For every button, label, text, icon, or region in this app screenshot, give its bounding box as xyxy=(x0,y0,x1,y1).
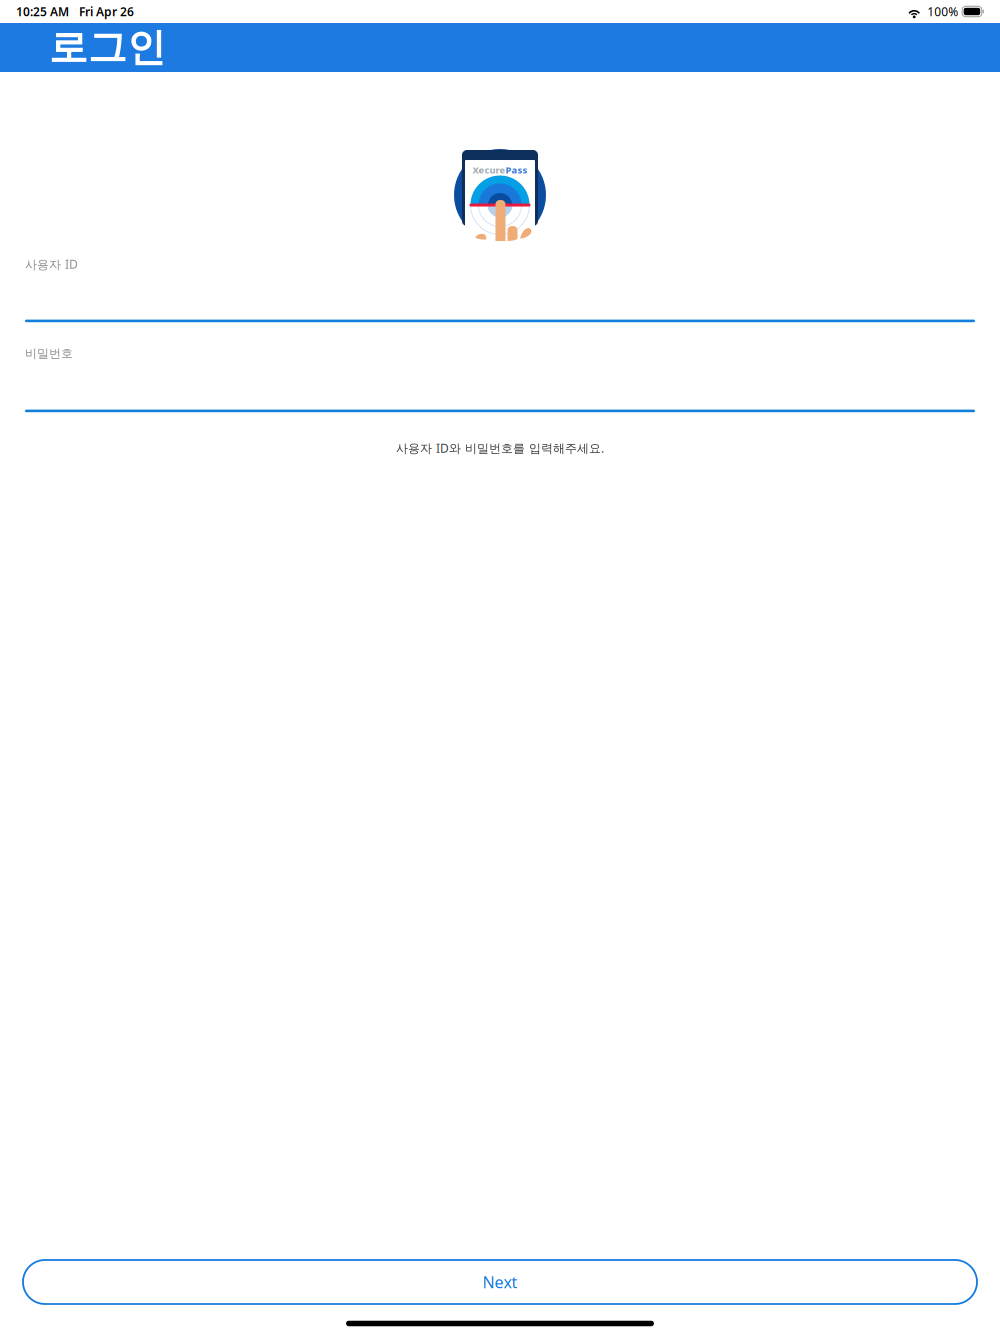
staticText: Pass xyxy=(505,164,527,176)
staticText: 10:25 AM xyxy=(16,3,69,19)
button[interactable]: 비밀번호 xyxy=(25,346,975,412)
staticText: Next xyxy=(482,1271,517,1293)
staticText: 사용자 ID와 비밀번호를 입력해주세요. xyxy=(396,440,604,456)
button[interactable]: Next xyxy=(23,1260,977,1304)
staticText: Xecure xyxy=(472,164,505,176)
staticText: 사용자 ID xyxy=(25,256,78,272)
staticText: 100% xyxy=(927,3,958,19)
staticText: 로그인 xyxy=(49,24,166,71)
button[interactable]: 사용자 ID xyxy=(25,256,975,322)
staticText: Fri Apr 26 xyxy=(79,3,134,19)
staticText: 비밀번호 xyxy=(25,346,73,361)
